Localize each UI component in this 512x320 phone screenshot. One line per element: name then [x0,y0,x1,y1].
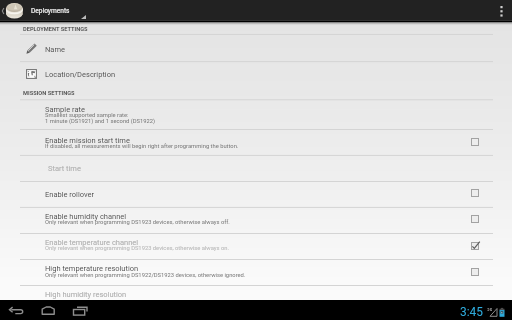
button[interactable]: Checkbox [465,132,485,152]
button[interactable]: Recents [72,302,89,318]
button[interactable]: Checkbox [465,236,485,256]
staticText: Only relevant when programming DS1923 de… [45,219,230,226]
staticText: High temperature resolution [45,264,139,273]
staticText: Only relevant when programming DS1923 de… [45,245,230,252]
button[interactable]: Enable humidity channel [20,204,493,230]
staticText: Enable temperature channel [45,238,139,247]
button[interactable]: High temperature resolution [20,256,493,282]
button[interactable]: Name [20,37,493,61]
button[interactable]: More options [490,0,512,21]
button[interactable]: Home [41,302,57,318]
staticText: 1 minute (DS1921) and 1 second (DS1922) [45,118,156,125]
staticText: High humidity resolution [45,290,127,299]
staticText: If disabled, all measurements will begin… [45,143,239,150]
button[interactable]: Location/Description [20,62,493,86]
button[interactable]: High humidity resolution [20,282,493,306]
button[interactable]: Checkbox [465,209,485,229]
staticText: Sample rate [45,105,85,114]
staticText: Enable humidity channel [45,212,127,221]
staticText: 3:45 [460,305,483,319]
button[interactable]: Enable rollover [20,182,493,206]
staticText: Enable rollover [45,190,95,199]
button[interactable]: Enable mission start time [20,128,493,154]
staticText: Location/Description [45,70,116,79]
staticText: Only relevant when programming DS1922/DS… [45,272,246,279]
staticText: Smallest supported sample rate: [45,112,129,119]
button[interactable]: Sample rate [20,97,493,123]
button[interactable]: Deployments [0,0,512,21]
staticText: Deployments [31,7,70,15]
button[interactable]: Checkbox [465,183,485,203]
staticText: MISSION SETTINGS [23,90,75,97]
staticText: Name [45,45,65,54]
staticText: Start time [48,164,81,173]
button[interactable]: Enable temperature channel [20,230,493,256]
button[interactable]: Start time [20,156,493,180]
staticText: DEPLOYMENT SETTINGS [23,26,88,33]
button[interactable]: Checkbox [465,262,485,282]
staticText: Enable mission start time [45,136,130,145]
button[interactable]: Back [6,302,24,318]
